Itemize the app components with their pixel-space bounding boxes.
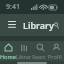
staticText: Library — [16, 53, 32, 60]
button[interactable]: Search — [32, 41, 48, 61]
staticText: Library — [23, 19, 54, 31]
staticText: 9:41 — [6, 2, 20, 12]
staticText: Search — [32, 53, 48, 60]
button[interactable]: Search — [54, 18, 59, 32]
staticText: Profile — [48, 53, 64, 60]
button[interactable]: Library — [16, 41, 32, 61]
button[interactable]: Home — [0, 41, 16, 61]
button[interactable]: Menu — [5, 18, 19, 32]
button[interactable]: Profile — [48, 41, 64, 61]
staticText: Home — [0, 53, 16, 60]
